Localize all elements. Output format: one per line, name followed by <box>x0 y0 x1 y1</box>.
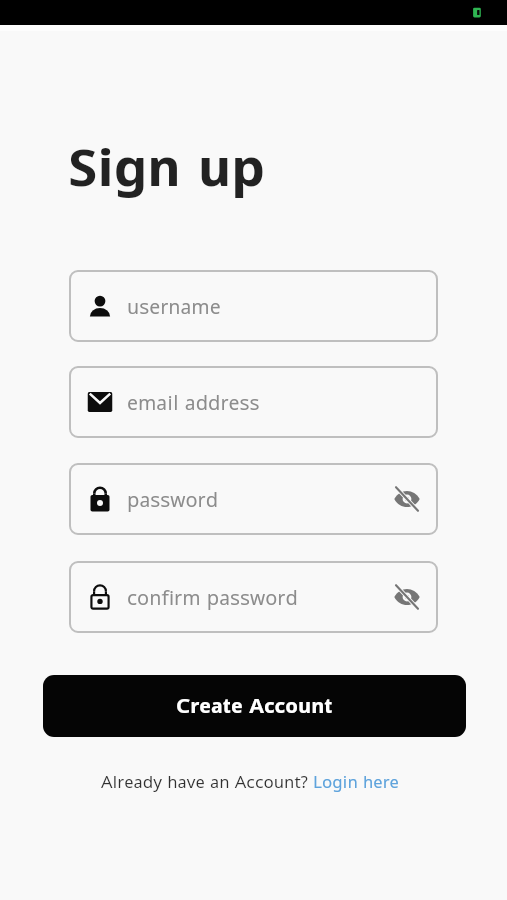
staticText: Already have an Account? <box>101 772 313 792</box>
button[interactable]: confirm password <box>69 561 438 633</box>
staticText: password <box>127 488 219 511</box>
button[interactable]: password <box>69 463 438 535</box>
button[interactable]: username <box>69 270 438 342</box>
staticText: Sign up <box>68 137 265 197</box>
button[interactable]: Login here <box>313 772 399 792</box>
button[interactable]: Show password <box>393 485 421 513</box>
staticText: email address <box>127 391 260 414</box>
staticText: username <box>127 295 221 318</box>
button[interactable]: Show password <box>393 583 421 611</box>
button[interactable]: Create Account <box>43 675 466 737</box>
staticText: Create Account <box>176 694 333 718</box>
staticText: confirm password <box>127 586 298 609</box>
button[interactable]: email address <box>69 366 438 438</box>
